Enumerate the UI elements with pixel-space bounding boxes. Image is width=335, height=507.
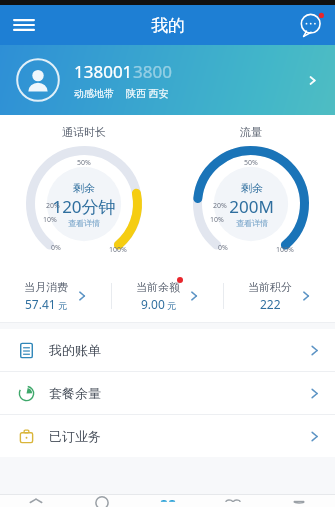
button[interactable]: 已订业务 [0,415,335,457]
staticText: 查看详情 [236,218,268,228]
button[interactable]: 流量 [167,115,335,270]
button[interactable]: 我的账单 [0,329,335,371]
staticText: 元 [167,300,176,311]
staticText: 100% [276,245,294,255]
staticText: 3800 [133,60,172,83]
staticText: 当月消费 [24,280,68,294]
staticText: 陕西 西安 [126,86,169,100]
staticText: 我的 [151,15,185,36]
button[interactable]: Menu [6,7,42,43]
button[interactable]: 当前余额 [112,270,223,322]
staticText: 20% [46,201,60,211]
button[interactable]: Services [138,497,198,507]
button[interactable]: Home [6,497,66,507]
button[interactable]: Discover [72,497,132,507]
staticText: 当前积分 [248,280,292,294]
staticText: 0% [51,243,61,253]
staticText: 当前余额 [136,280,180,294]
staticText: 0% [218,243,228,253]
button[interactable]: 138001 [0,45,335,115]
staticText: 200M [229,195,274,218]
staticText: 57.41 [25,296,56,312]
other: Profile details [301,69,323,91]
staticText: 查看详情 [68,218,100,228]
staticText: 流量 [240,125,262,139]
button[interactable]: 当前积分 [224,270,335,322]
staticText: 动感地带 [74,87,114,100]
staticText: 剩余 [73,181,95,195]
staticText: 138001 [74,60,133,83]
staticText: 元 [58,300,67,311]
button[interactable]: 当月消费 [0,270,111,322]
staticText: 套餐余量 [49,385,101,401]
staticText: 9.00 [141,296,165,312]
staticText: 已订业务 [49,428,101,444]
button[interactable]: Life [203,497,263,507]
button[interactable]: 通话时长 [0,115,167,270]
staticText: 20% [213,201,227,211]
staticText: 剩余 [241,181,263,195]
button[interactable]: 套餐余量 [0,372,335,414]
staticText: 222 [260,296,281,312]
staticText: 120分钟 [52,195,116,218]
staticText: 10% [43,215,57,225]
staticText: 10% [210,215,224,225]
staticText: 100% [109,245,127,255]
staticText: 我的账单 [49,342,101,358]
staticText: 50% [244,158,258,168]
staticText: 50% [77,158,91,168]
button[interactable]: Mine [269,497,329,507]
staticText: 通话时长 [62,125,106,139]
button[interactable]: Messages [294,7,330,43]
